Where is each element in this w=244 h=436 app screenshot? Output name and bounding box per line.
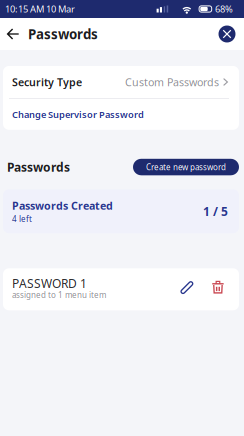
button[interactable]: Edit password <box>176 274 198 304</box>
button[interactable]: Close <box>214 18 240 50</box>
staticText: Passwords <box>7 159 70 175</box>
button[interactable]: Change Supervisor Password <box>3 99 239 130</box>
button[interactable]: Delete password <box>209 274 227 304</box>
staticText: Create new password <box>146 162 226 172</box>
staticText: Passwords Created <box>12 198 113 213</box>
staticText: 4 left <box>12 214 32 224</box>
staticText: assigned to 1 menu item <box>12 290 106 300</box>
staticText: Security Type <box>12 75 82 89</box>
staticText: 10:15 AM 10 Mar <box>5 3 75 15</box>
staticText: 68% <box>215 3 233 15</box>
staticText: Change Supervisor Password <box>12 108 144 120</box>
staticText: Passwords <box>28 25 98 43</box>
button[interactable]: Back <box>3 18 23 50</box>
staticText: Custom Passwords <box>125 75 219 89</box>
staticText: PASSWORD 1 <box>12 275 87 291</box>
button[interactable]: Security Type <box>3 66 239 98</box>
staticText: 1 / 5 <box>203 203 228 219</box>
button[interactable]: Create new password <box>133 159 239 175</box>
